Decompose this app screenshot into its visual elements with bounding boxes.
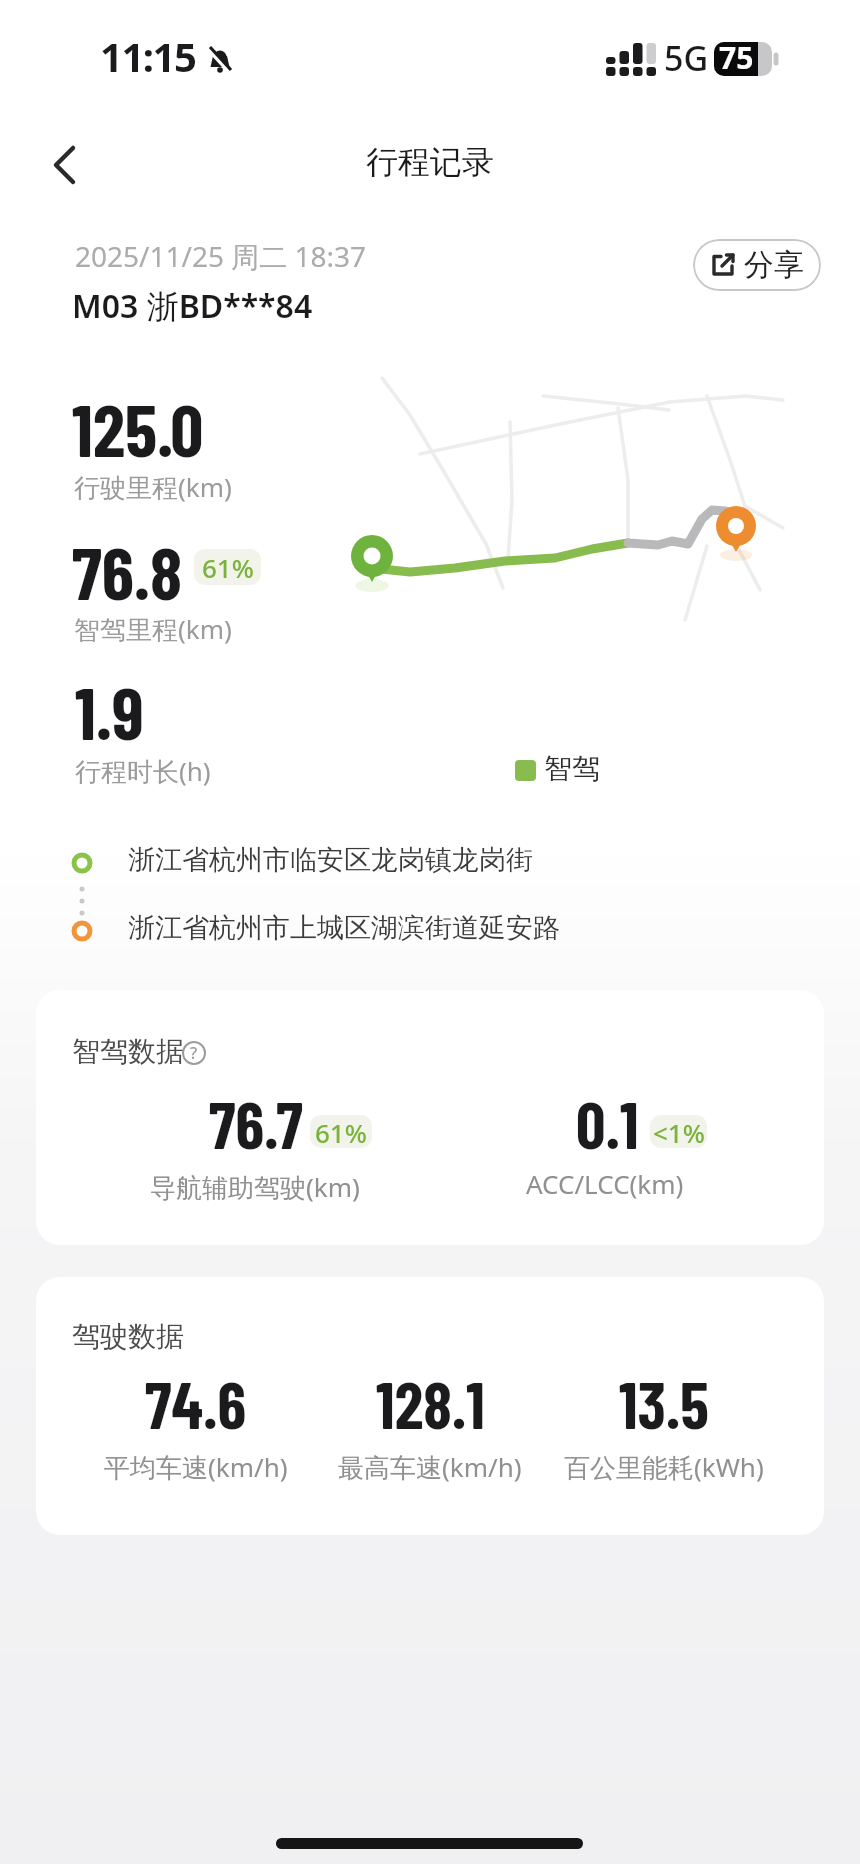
staticText: 分享 — [744, 246, 804, 284]
staticText: ? — [190, 1042, 198, 1064]
staticText: 百公里能耗(kWh) — [564, 1449, 764, 1485]
staticText: 74.6 — [145, 1364, 247, 1442]
staticText: ACC/LCC(km) — [526, 1166, 684, 1201]
staticText: 平均车速(km/h) — [104, 1449, 288, 1485]
staticText: <1% — [653, 1115, 705, 1148]
staticText: 行程时长(h) — [75, 753, 211, 789]
staticText: 智驾 — [544, 751, 600, 786]
staticText: 76.8 — [72, 527, 183, 615]
staticText: 128.1 — [376, 1364, 485, 1442]
staticText: 75 — [719, 37, 754, 78]
staticText: 智驾里程(km) — [74, 611, 232, 647]
staticText: 行驶里程(km) — [74, 469, 232, 505]
staticText: 5G — [664, 35, 709, 81]
staticText: 驾驶数据 — [72, 1319, 184, 1354]
staticText: 1.9 — [75, 667, 144, 755]
staticText: 13.5 — [619, 1364, 709, 1442]
staticText: 智驾数据 — [72, 1034, 184, 1069]
staticText: 2025/11/25 周二 18:37 — [75, 237, 367, 275]
staticText: 11:15 — [100, 29, 196, 83]
button[interactable]: 分享 — [693, 239, 821, 291]
staticText: 浙江省杭州市上城区湖滨街道延安路 — [128, 911, 560, 945]
staticText: M03 浙BD***84 — [72, 284, 313, 328]
staticText: 0.1 — [576, 1084, 639, 1162]
button[interactable]: ? — [182, 1041, 206, 1065]
staticText: 行程记录 — [366, 142, 494, 182]
button[interactable] — [36, 135, 96, 195]
staticText: 导航辅助驾驶(km) — [150, 1169, 360, 1205]
staticText: 最高车速(km/h) — [338, 1449, 522, 1485]
staticText: 浙江省杭州市临安区龙岗镇龙岗街 — [128, 843, 533, 877]
staticText: 61% — [202, 550, 254, 585]
staticText: 76.7 — [209, 1084, 303, 1162]
staticText: 125.0 — [72, 384, 204, 472]
staticText: 61% — [315, 1115, 367, 1148]
